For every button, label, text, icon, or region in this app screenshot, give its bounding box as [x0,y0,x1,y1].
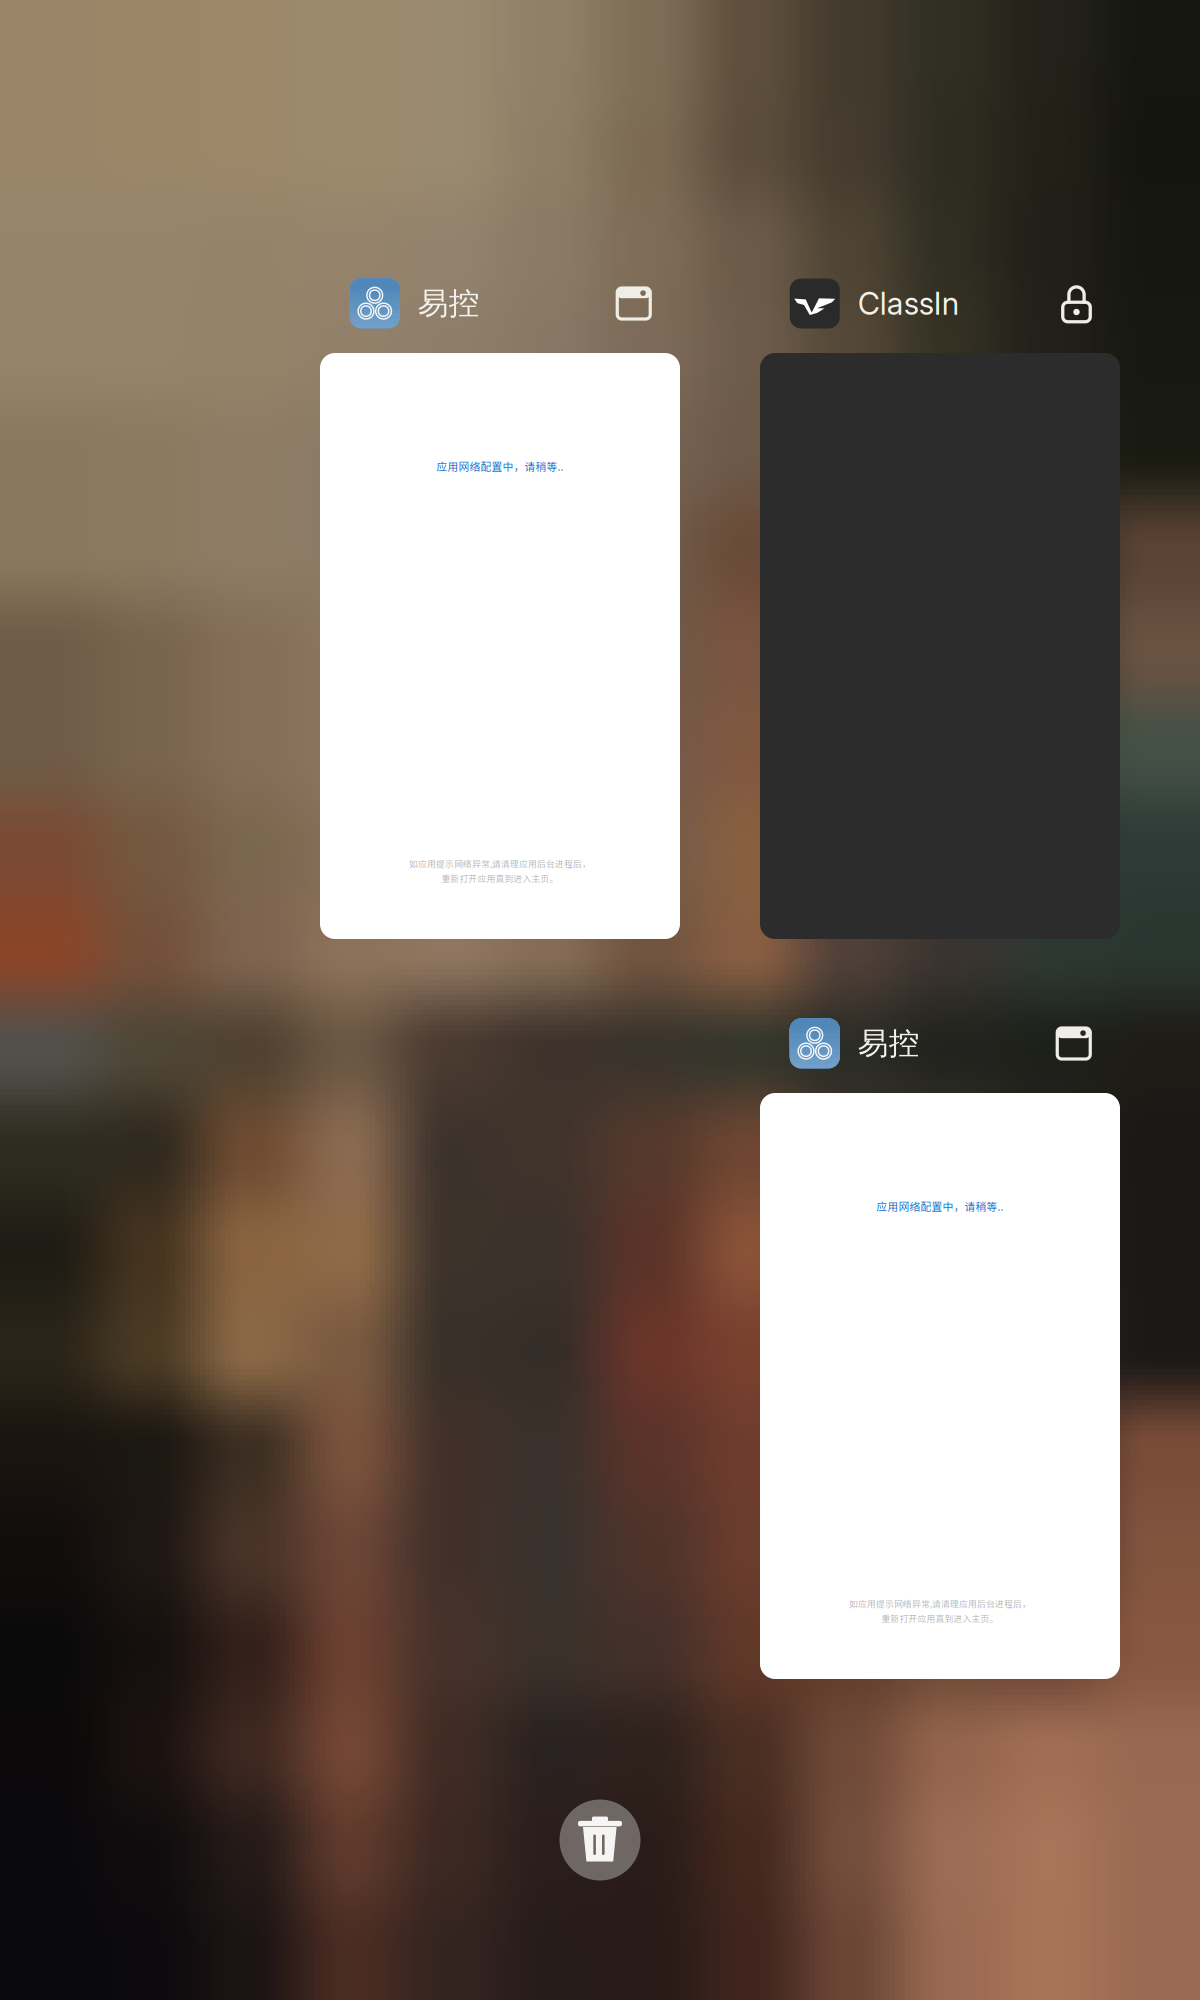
staticText: 应用网络配置中，请稍等.. [436,458,563,474]
button[interactable]: 易控 [760,1018,1120,1679]
button[interactable]: ClassIn [790,278,959,328]
button[interactable]: Window options [1057,1028,1090,1059]
button[interactable]: Close all apps [559,1799,640,1880]
staticText: ClassIn [858,285,959,322]
button[interactable]: 易控 [790,1018,920,1068]
button[interactable]: Locked [1063,285,1090,322]
staticText: 易控 [858,1024,920,1063]
staticText: 重新打开应用直到进入主页。 [441,872,558,884]
button[interactable]: 易控 [320,278,680,939]
button[interactable]: ClassIn [760,278,1120,939]
button[interactable]: Window options [617,288,650,319]
staticText: 易控 [418,284,480,323]
staticText: 重新打开应用直到进入主页。 [881,1612,998,1624]
button[interactable]: 易控 [350,278,480,328]
staticText: 如应用提示网络异常,请清理应用后台进程后， [409,857,591,870]
staticText: 如应用提示网络异常,请清理应用后台进程后， [849,1597,1031,1610]
staticText: 应用网络配置中，请稍等.. [876,1198,1003,1214]
